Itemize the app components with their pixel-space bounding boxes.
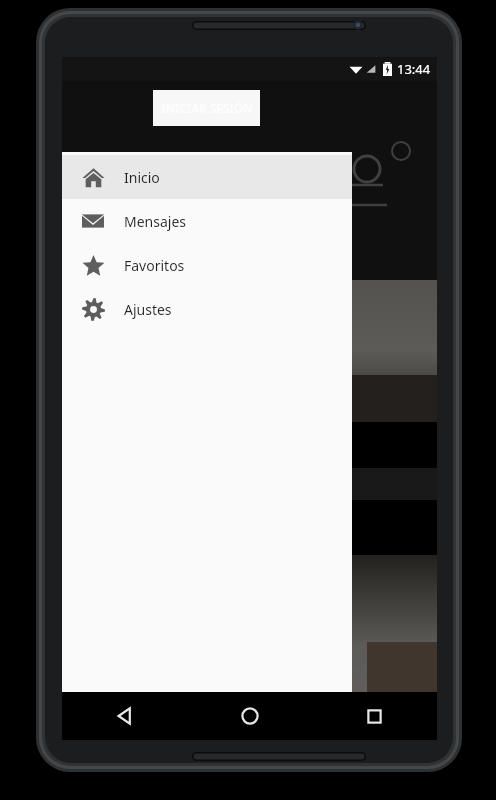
button[interactable]: Back bbox=[62, 692, 187, 740]
staticText: BeepQuest bbox=[172, 718, 244, 736]
button[interactable]: Home bbox=[187, 692, 312, 740]
button[interactable]: Recent apps bbox=[312, 692, 437, 740]
staticText: Favoritos bbox=[124, 256, 185, 275]
staticText: Mensajes bbox=[124, 212, 187, 231]
staticText: Ajustes bbox=[124, 300, 172, 319]
button[interactable]: Inicio bbox=[62, 155, 352, 199]
staticText: 13:44 bbox=[397, 60, 431, 78]
staticText: Inicio bbox=[124, 168, 160, 187]
button[interactable]: Favoritos bbox=[62, 243, 352, 287]
button[interactable]: Mensajes bbox=[62, 199, 352, 243]
button[interactable]: Ajustes bbox=[62, 287, 352, 331]
